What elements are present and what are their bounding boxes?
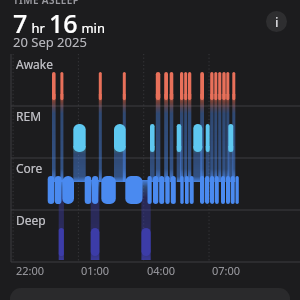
staticText: 07:00	[212, 263, 241, 278]
staticText: REM	[16, 108, 42, 124]
staticText: 20 Sep 2025	[13, 33, 87, 51]
staticText: hr	[28, 19, 49, 37]
staticText: Awake	[16, 56, 54, 72]
staticText: min	[78, 19, 105, 37]
staticText: 04:00	[147, 263, 176, 278]
staticText: 7	[13, 6, 28, 40]
staticText: i	[275, 13, 279, 31]
staticText: TIME ASLEEP	[13, 0, 80, 7]
staticText: Core	[16, 160, 43, 176]
staticText: 16	[49, 6, 78, 40]
button[interactable]: Info	[266, 11, 287, 32]
staticText: 01:00	[81, 263, 110, 278]
staticText: 22:00	[16, 263, 45, 278]
staticText: Deep	[16, 212, 46, 228]
